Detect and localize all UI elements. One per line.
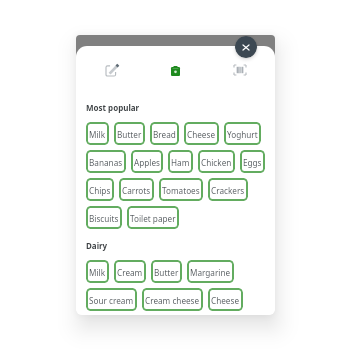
staticText: Cheese [187,129,216,140]
button[interactable]: Margarine [187,260,234,283]
button[interactable]: Bananas [86,150,126,173]
button[interactable]: Chicken [198,150,235,173]
button[interactable]: Crackers [208,178,248,201]
staticText: Dairy [86,240,108,251]
staticText: Tomatoes [162,185,200,196]
staticText: Eggs [243,157,262,168]
staticText: Most popular [86,102,140,113]
button[interactable]: Butter [114,122,145,145]
button[interactable]: Tomatoes [159,178,203,201]
button[interactable]: Yoghurt [224,122,261,145]
staticText: Yoghurt [227,129,258,140]
staticText: Cream cheese [145,295,200,306]
staticText: Carrots [122,185,151,196]
button[interactable]: Bread [150,122,179,145]
staticText: Crackers [211,185,245,196]
button[interactable]: Milk [86,260,109,283]
button[interactable]: Chips [86,178,114,201]
button[interactable]: Edit list [99,57,125,83]
staticText: Butter [117,129,142,140]
button[interactable]: Cream [114,260,146,283]
button[interactable]: Milk [86,122,109,145]
staticText: Milk [89,129,106,140]
staticText: Cheese [211,295,240,306]
button[interactable]: Cheese [208,288,243,311]
staticText: Butter [154,267,179,278]
button[interactable]: Eggs [240,150,265,173]
button[interactable]: Shopping list [162,58,188,84]
button[interactable]: Cheese [184,122,219,145]
button[interactable]: Scan barcode [227,57,253,83]
button[interactable]: Cream cheese [142,288,203,311]
button[interactable]: Sour cream [86,288,137,311]
button[interactable]: Biscuits [86,206,122,229]
staticText: Ham [171,157,190,168]
button[interactable]: Ham [168,150,193,173]
staticText: Sour cream [89,295,134,306]
button[interactable]: Carrots [119,178,154,201]
staticText: Chicken [201,157,232,168]
staticText: Milk [89,267,106,278]
staticText: Bananas [89,157,123,168]
staticText: Apples [134,157,160,168]
staticText: Margarine [190,267,231,278]
staticText: Cream [117,267,143,278]
button[interactable]: Close [235,36,257,58]
button[interactable]: Toilet paper [127,206,179,229]
button[interactable]: Apples [131,150,163,173]
staticText: Biscuits [89,213,119,224]
button[interactable]: Butter [151,260,182,283]
staticText: Toilet paper [130,213,176,224]
staticText: Chips [89,185,111,196]
staticText: Bread [153,129,176,140]
